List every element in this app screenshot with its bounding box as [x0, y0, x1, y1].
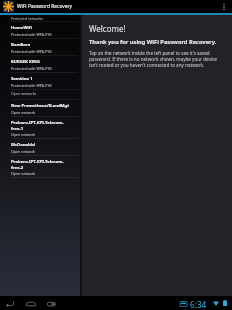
button[interactable]: Proburo-IPT-KPI-Telecom- free-2	[0, 156, 80, 178]
staticText: Protected with WPA-PSK	[11, 83, 52, 88]
staticText: Open networks	[11, 91, 37, 96]
staticText: BomBora	[11, 42, 31, 48]
button[interactable]: BURGER KING	[0, 56, 80, 73]
button[interactable]: More options	[218, 0, 230, 13]
staticText: Welcome!	[89, 23, 126, 34]
button[interactable]: Home	[24, 297, 37, 310]
button[interactable]: Proburo-IPT-KPI-Telecom- free-1	[0, 117, 80, 139]
staticText: Protected with WPA-PSK	[11, 32, 52, 37]
staticText: New Prometheus/ILandMgt	[11, 103, 69, 109]
staticText: Samkino 1	[11, 76, 33, 82]
staticText: Open network	[11, 149, 36, 154]
staticText: Proburo-IPT-KPI-Telecom- free-2	[11, 159, 64, 170]
staticText: McDonaldsl	[11, 142, 36, 148]
staticText: Open network	[11, 110, 36, 115]
staticText: Proburo-IPT-KPI-Telecom- free-1	[11, 120, 64, 131]
staticText: Open network	[11, 171, 36, 176]
button[interactable]: Recent apps	[45, 297, 58, 310]
button[interactable]: HomeWiFi	[0, 22, 80, 39]
staticText: BURGER KING	[11, 59, 40, 65]
button[interactable]: New Prometheus/ILandMgt	[0, 100, 80, 117]
button[interactable]: McDonaldsl	[0, 139, 80, 156]
staticText: 6:34	[190, 299, 207, 310]
staticText: WiFi Password Recovery	[17, 3, 73, 10]
button[interactable]: BomBora	[0, 39, 80, 56]
staticText: HomeWiFi	[11, 25, 33, 31]
button[interactable]: Back	[3, 297, 16, 310]
staticText: Tap on the network inside the left panel…	[89, 50, 217, 68]
staticText: Protected networks	[11, 16, 44, 21]
staticText: Protected with WPA-PSK	[11, 66, 52, 71]
staticText: Protected with WPA-PSK	[11, 49, 52, 54]
button[interactable]: Samkino 1	[0, 73, 80, 90]
staticText: Thank you for using WiFi Password Recove…	[89, 38, 217, 46]
staticText: Open network	[11, 132, 36, 137]
